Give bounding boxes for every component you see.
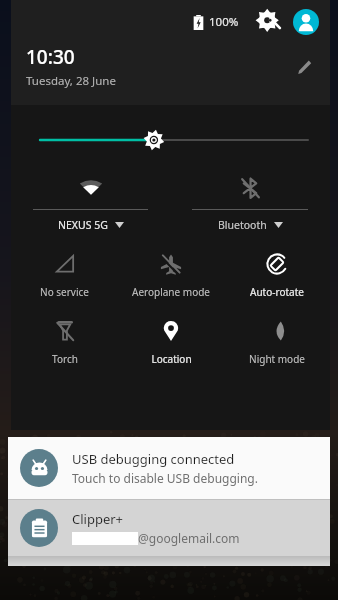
button[interactable]: NEXUS 5G — [11, 175, 170, 232]
staticText: Night mode — [249, 352, 305, 366]
button[interactable]: Auto-rotate — [224, 250, 330, 301]
button[interactable]: Bluetooth — [170, 175, 330, 232]
staticText: @googlemail.com — [138, 530, 240, 546]
staticText: Clipper+ — [72, 510, 124, 528]
button[interactable]: Torch — [11, 317, 118, 368]
button[interactable]: USB debugging connected — [8, 437, 330, 499]
button[interactable]: Aeroplane mode — [118, 250, 224, 301]
staticText: Auto-rotate — [250, 285, 304, 299]
staticText: Bluetooth — [218, 218, 267, 232]
staticText: 100% — [209, 14, 239, 30]
button[interactable]: Brightness — [11, 127, 330, 153]
staticText: 10:30 — [26, 44, 75, 70]
button[interactable]: User profile — [293, 9, 319, 35]
staticText: NEXUS 5G — [58, 218, 108, 232]
staticText: Touch to disable USB debugging. — [72, 470, 258, 486]
button[interactable]: Location — [118, 317, 224, 368]
staticText: Torch — [52, 352, 78, 366]
button[interactable]: Edit quick settings — [288, 51, 320, 83]
staticText: Tuesday, 28 June — [26, 73, 116, 89]
staticText: USB debugging connected — [72, 450, 235, 468]
button[interactable]: Night mode — [224, 317, 330, 368]
button[interactable]: Settings — [255, 7, 285, 37]
staticText: Location — [151, 352, 192, 366]
staticText: No service — [40, 285, 89, 299]
staticText: Aeroplane mode — [132, 285, 210, 299]
button[interactable]: No service — [11, 250, 118, 301]
button[interactable]: Clipper+ — [8, 500, 330, 556]
